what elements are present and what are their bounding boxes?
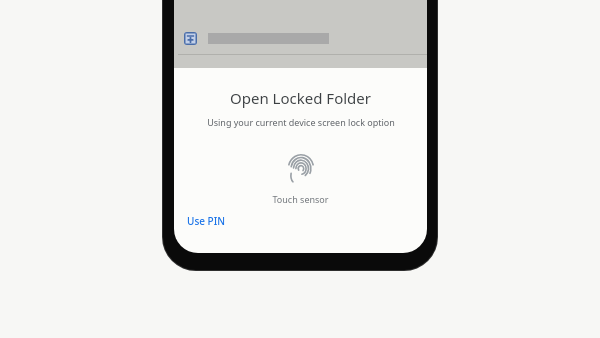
staticText: Open Locked Folder	[230, 88, 371, 108]
button[interactable]: Use PIN	[183, 211, 229, 231]
button[interactable]: Fingerprint sensor	[286, 153, 316, 183]
staticText: Using your current device screen lock op…	[207, 116, 395, 128]
staticText: Use PIN	[187, 214, 225, 228]
button[interactable]: App icon	[184, 32, 197, 45]
staticText: Touch sensor	[272, 193, 329, 205]
